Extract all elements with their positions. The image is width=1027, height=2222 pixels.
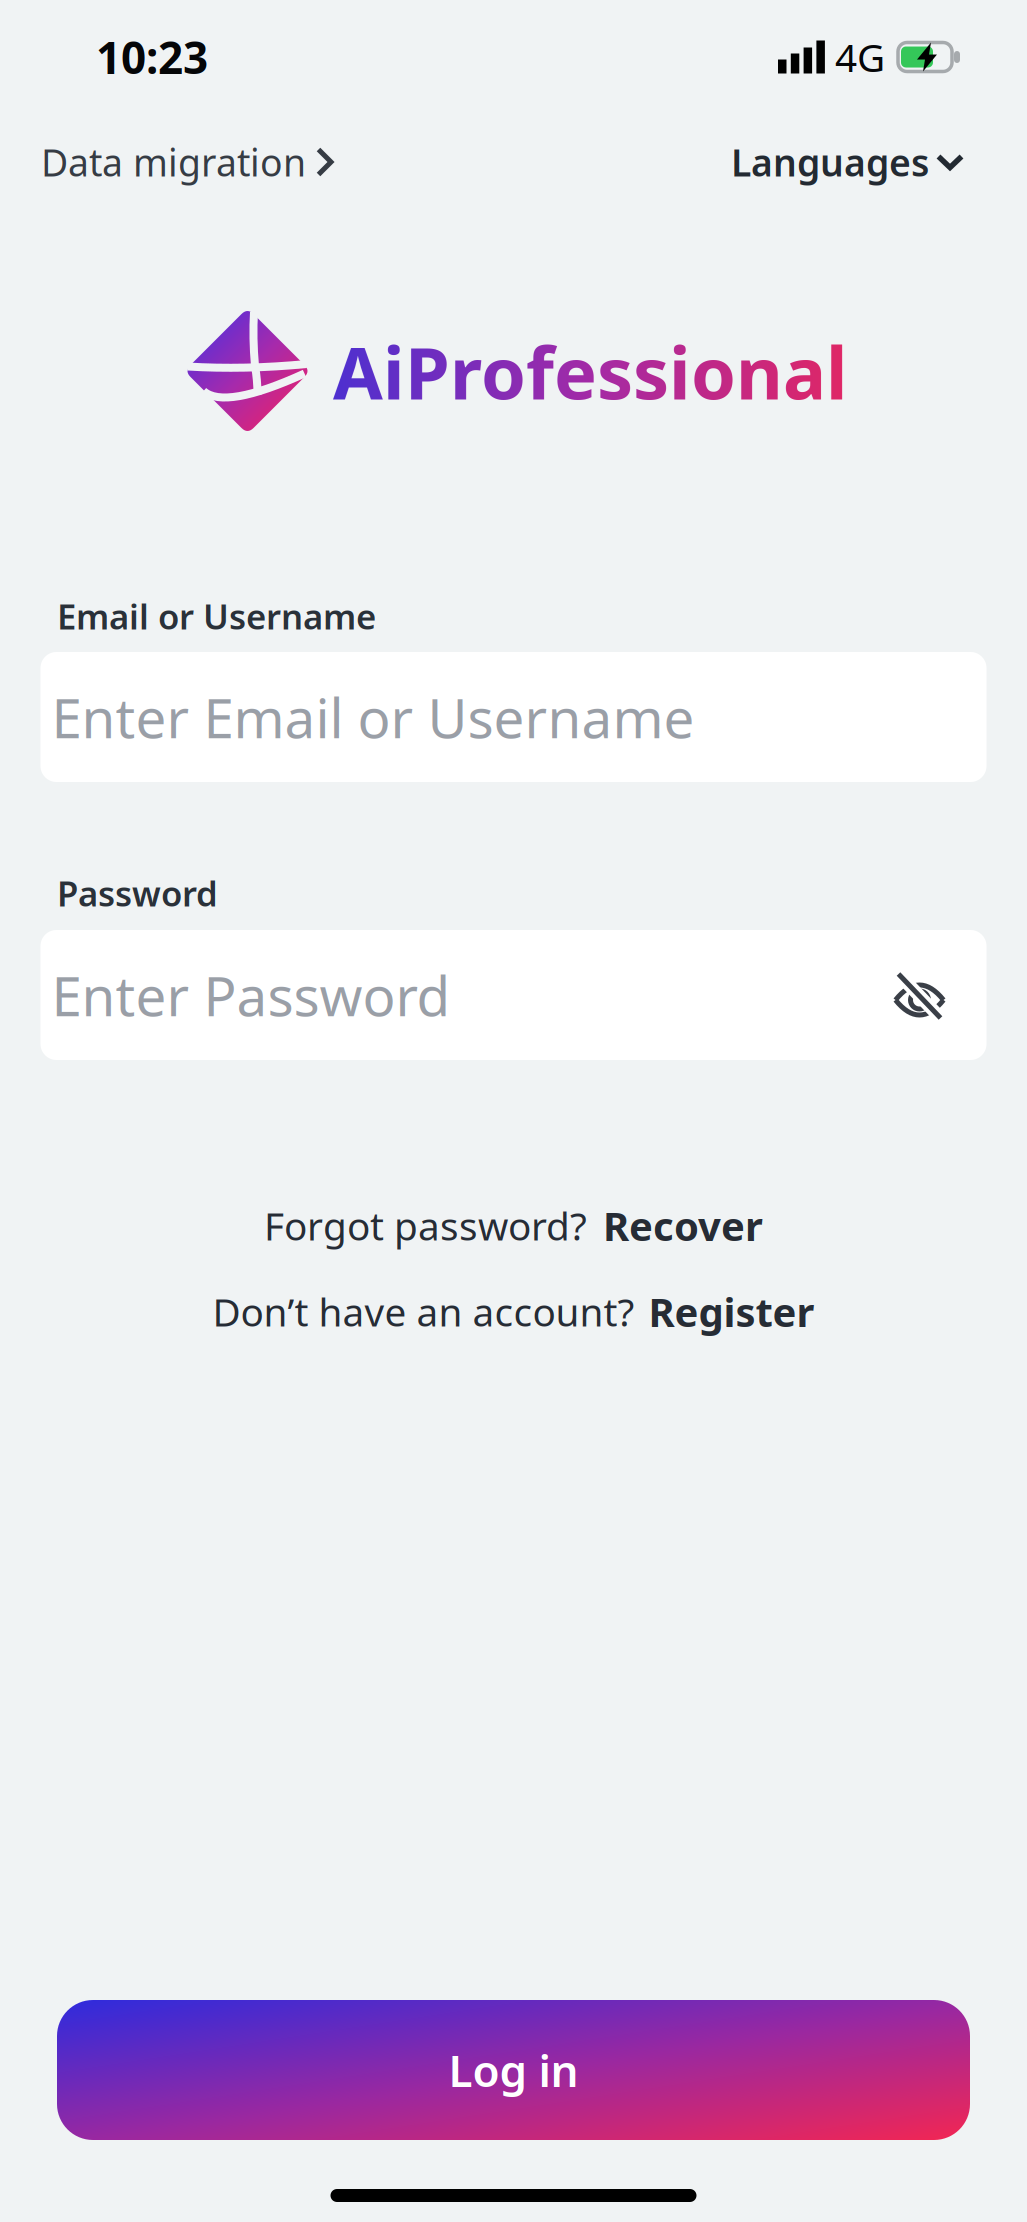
staticText: Password: [57, 870, 218, 916]
staticText: Languages: [731, 137, 929, 187]
staticText: Forgot password?: [264, 1200, 587, 1251]
button[interactable]: Recover: [603, 1199, 763, 1252]
staticText: Recover: [603, 1199, 763, 1252]
button[interactable]: Data migration: [41, 137, 334, 187]
button[interactable]: Log in: [57, 2000, 970, 2140]
button[interactable]: Register: [648, 1285, 814, 1338]
button[interactable]: Enter Password: [40, 930, 986, 1060]
staticText: Register: [648, 1285, 814, 1338]
staticText: 4G: [835, 31, 885, 83]
button[interactable]: Languages: [731, 137, 964, 187]
staticText: Don’t have an account?: [212, 1286, 634, 1337]
staticText: Enter Email or Username: [51, 681, 694, 753]
staticText: Enter Password: [51, 959, 450, 1031]
staticText: Email or Username: [57, 593, 376, 639]
staticText: 10:23: [96, 28, 208, 86]
button[interactable]: Enter Email or Username: [40, 652, 986, 782]
staticText: Log in: [448, 2041, 578, 2099]
staticText: Data migration: [41, 137, 306, 187]
